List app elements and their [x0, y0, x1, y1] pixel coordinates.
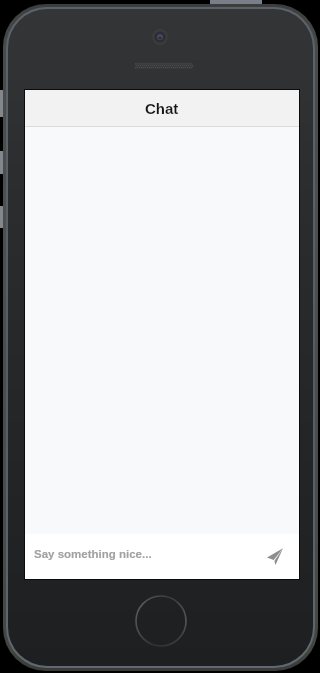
staticText: Chat [145, 100, 179, 117]
button[interactable]: Send [255, 535, 299, 579]
staticText: Say something nice... [34, 548, 152, 561]
button[interactable]: Chat [25, 90, 299, 126]
button[interactable]: Say something nice... [25, 534, 255, 579]
